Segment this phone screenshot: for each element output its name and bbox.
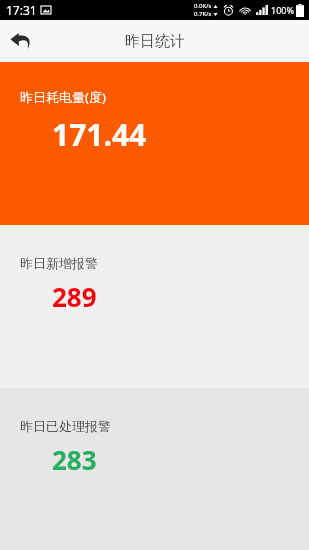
button[interactable]: 昨日已处理报警	[0, 388, 309, 550]
staticText: 0.7K/s	[194, 10, 212, 18]
staticText: 171.44	[52, 114, 147, 155]
staticText: 100%	[271, 4, 294, 16]
staticText: 昨日新增报警	[20, 255, 98, 271]
staticText: 昨日统计	[125, 32, 185, 51]
staticText: 289	[52, 279, 97, 314]
button[interactable]: Back	[0, 20, 42, 62]
staticText: 17:31	[6, 2, 37, 18]
staticText: 0.0K/s	[194, 2, 212, 10]
button[interactable]: 昨日新增报警	[0, 225, 309, 388]
button[interactable]: 昨日耗电量(度)	[0, 62, 309, 225]
staticText: 昨日耗电量(度)	[20, 88, 106, 106]
staticText: 283	[52, 442, 97, 477]
staticText: 昨日已处理报警	[20, 418, 111, 434]
